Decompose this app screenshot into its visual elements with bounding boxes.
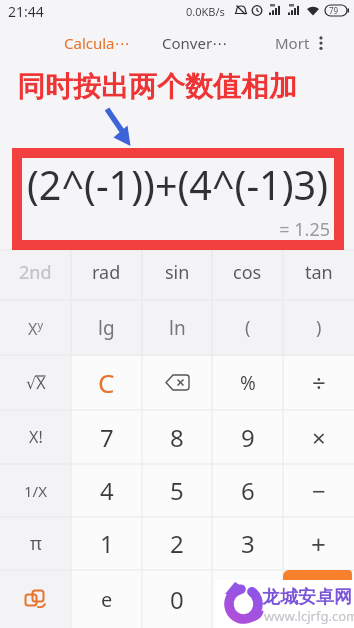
- button[interactable]: −: [283, 464, 354, 517]
- button[interactable]: cos: [212, 245, 283, 299]
- button[interactable]: [311, 30, 331, 56]
- button[interactable]: Xy: [0, 300, 71, 355]
- staticText: %: [240, 370, 256, 396]
- button[interactable]: e: [71, 570, 142, 628]
- button[interactable]: (: [212, 300, 283, 355]
- staticText: 21:44: [8, 2, 44, 21]
- staticText: Mort: [275, 33, 310, 53]
- staticText: C: [98, 365, 115, 400]
- button[interactable]: ×: [283, 410, 354, 464]
- staticText: 7: [100, 421, 114, 454]
- staticText: 0.0KB/s: [186, 4, 225, 19]
- staticText: 4: [100, 474, 114, 507]
- staticText: ×: [312, 421, 326, 454]
- staticText: 5: [170, 474, 184, 507]
- staticText: Calcula⋯: [64, 33, 130, 53]
- staticText: 2nd: [19, 260, 52, 285]
- staticText: ): [316, 315, 322, 340]
- staticText: lg: [98, 315, 115, 341]
- staticText: tan: [305, 260, 333, 285]
- staticText: 6: [241, 474, 255, 507]
- button[interactable]: 1: [71, 517, 142, 570]
- button[interactable]: √X: [0, 355, 71, 410]
- staticText: e: [101, 586, 113, 613]
- button[interactable]: 9: [212, 410, 283, 464]
- button[interactable]: Calcula⋯: [55, 30, 139, 56]
- staticText: +: [311, 526, 326, 561]
- button[interactable]: ): [283, 300, 354, 355]
- button[interactable]: [142, 355, 212, 410]
- staticText: = 1.25: [22, 217, 330, 242]
- staticText: π: [30, 531, 42, 556]
- button[interactable]: 6: [212, 464, 283, 517]
- staticText: 1: [100, 527, 114, 560]
- button[interactable]: [0, 570, 71, 628]
- button[interactable]: 2nd: [0, 245, 71, 299]
- button[interactable]: ln: [142, 300, 212, 355]
- button[interactable]: 8: [142, 410, 212, 464]
- button[interactable]: .: [212, 570, 283, 628]
- staticText: (2^(-1))+(4^(-1)3): [22, 158, 333, 212]
- staticText: −: [312, 474, 326, 507]
- button[interactable]: =: [283, 570, 354, 628]
- button[interactable]: Mort: [262, 30, 322, 56]
- staticText: rad: [92, 260, 121, 285]
- button[interactable]: π: [0, 517, 71, 570]
- staticText: =: [310, 582, 325, 617]
- staticText: X!: [29, 426, 43, 448]
- button[interactable]: %: [212, 355, 283, 410]
- staticText: (: [245, 315, 251, 340]
- staticText: 龙城安卓网: [262, 586, 352, 609]
- staticText: Conver⋯: [162, 33, 228, 53]
- button[interactable]: sin: [142, 245, 212, 299]
- button[interactable]: X!: [0, 410, 71, 464]
- staticText: 2: [170, 527, 184, 560]
- button[interactable]: Conver⋯: [153, 30, 237, 56]
- button[interactable]: 0: [142, 570, 212, 628]
- button[interactable]: C: [71, 355, 142, 410]
- button[interactable]: lg: [71, 300, 142, 355]
- staticText: 9: [241, 421, 255, 454]
- staticText: 8: [170, 421, 184, 454]
- staticText: cos: [233, 260, 262, 285]
- staticText: 1/X: [24, 481, 47, 501]
- staticText: √X: [26, 372, 46, 394]
- staticText: 79: [329, 5, 339, 16]
- button[interactable]: 5: [142, 464, 212, 517]
- button[interactable]: rad: [71, 245, 142, 299]
- button[interactable]: tan: [283, 245, 354, 299]
- button[interactable]: 2: [142, 517, 212, 570]
- button[interactable]: +: [283, 517, 354, 570]
- button[interactable]: 4: [71, 464, 142, 517]
- button[interactable]: 1/X: [0, 464, 71, 517]
- staticText: www.lcjrfg.com: [264, 607, 354, 625]
- button[interactable]: 7: [71, 410, 142, 464]
- button[interactable]: ÷: [283, 355, 354, 410]
- staticText: ÷: [312, 366, 326, 399]
- staticText: 3: [241, 527, 255, 560]
- button[interactable]: 3: [212, 517, 283, 570]
- staticText: .: [244, 583, 251, 616]
- staticText: Xy: [28, 317, 43, 339]
- staticText: 0: [170, 583, 184, 616]
- staticText: 同时按出两个数值相加: [17, 69, 297, 104]
- staticText: sin: [165, 260, 190, 285]
- staticText: ln: [169, 315, 186, 341]
